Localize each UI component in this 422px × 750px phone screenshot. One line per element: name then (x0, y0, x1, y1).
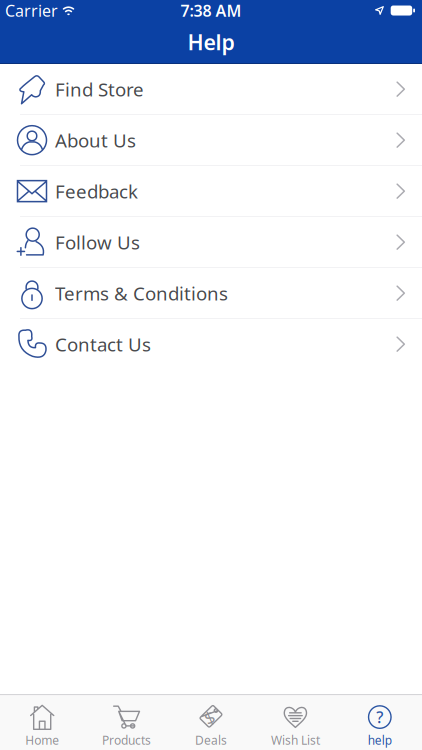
button[interactable]: Wish List (253, 704, 338, 748)
button[interactable]: Find Store (0, 64, 422, 115)
button[interactable]: Home (0, 704, 84, 748)
button[interactable]: Follow Us (0, 217, 422, 268)
staticText: Contact Us (55, 332, 151, 357)
staticText: $ (204, 706, 214, 729)
button[interactable]: ? (338, 704, 422, 748)
staticText: Help (187, 28, 234, 56)
staticText: Deals (195, 732, 227, 748)
staticText: Terms & Conditions (55, 281, 228, 306)
staticText: Feedback (55, 179, 138, 204)
staticText: ? (376, 706, 383, 728)
staticText: Follow Us (55, 230, 140, 255)
staticText: About Us (55, 128, 136, 153)
staticText: Wish List (271, 732, 320, 748)
button[interactable]: Contact Us (0, 319, 422, 370)
staticText: 7:38 AM (180, 0, 241, 21)
button[interactable]: Feedback (0, 166, 422, 217)
button[interactable]: $ (169, 704, 253, 748)
staticText: Find Store (55, 77, 144, 102)
staticText: Carrier (5, 0, 58, 21)
button[interactable]: About Us (0, 115, 422, 166)
button[interactable]: Products (84, 704, 169, 748)
button[interactable]: Terms & Conditions (0, 268, 422, 319)
staticText: Products (102, 732, 151, 748)
staticText: Home (25, 732, 59, 748)
staticText: help (368, 732, 392, 748)
